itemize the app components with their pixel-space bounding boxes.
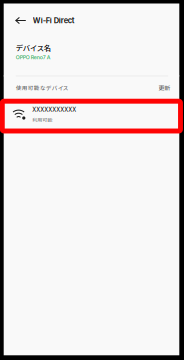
staticText: OPPO Reno7 A bbox=[16, 54, 51, 60]
button[interactable]: 更新 bbox=[158, 84, 170, 92]
staticText: デバイス名 bbox=[16, 42, 51, 53]
button[interactable]: Back bbox=[9, 8, 33, 32]
staticText: Wi-Fi Direct bbox=[33, 16, 75, 25]
staticText: 利用可能 bbox=[32, 116, 52, 123]
button[interactable]: XXXXXXXXXXX bbox=[4, 99, 179, 130]
staticText: XXXXXXXXXXX bbox=[32, 106, 76, 113]
staticText: 更新 bbox=[158, 84, 170, 92]
staticText: 使用可能なデバイス bbox=[16, 84, 69, 92]
